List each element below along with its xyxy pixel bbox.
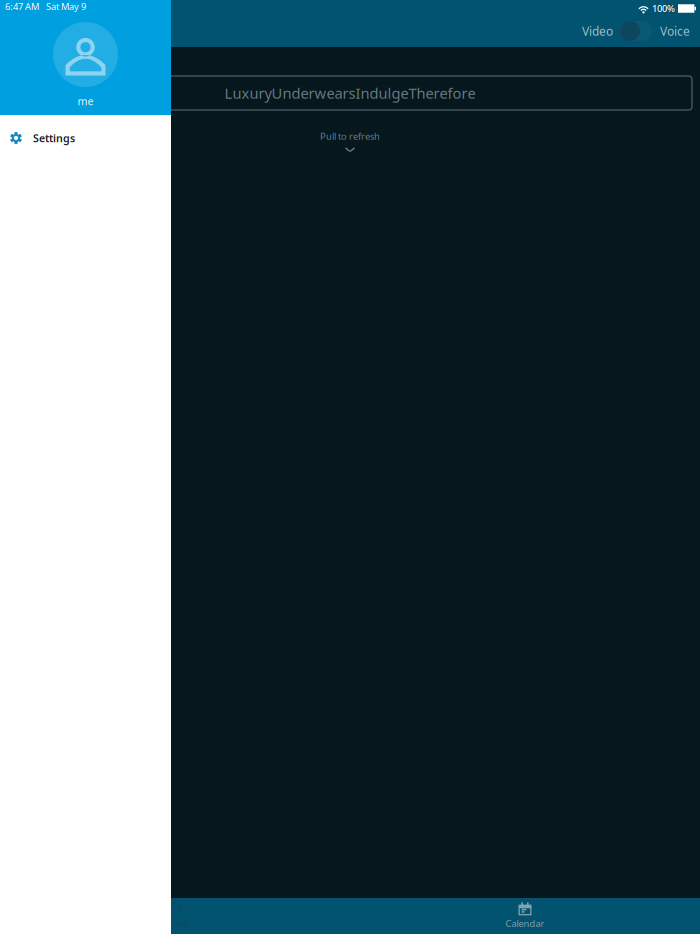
button[interactable]: me [53,12,118,108]
button[interactable]: Toggle video or voice [613,21,660,41]
button[interactable]: LuxuryUnderwearsIndulgeTherefore [0,47,700,110]
button[interactable]: Calendar [350,898,700,934]
staticText: Sat May 9 [46,0,86,13]
staticText: 6:47 AM [5,0,39,13]
staticText: Video [582,23,613,39]
staticText: LuxuryUnderwearsIndulgeTherefore [224,83,475,103]
staticText: Pull to refresh [320,130,380,142]
staticText: Recent [160,917,189,930]
staticText: Settings [33,131,75,145]
staticText: Calendar [505,917,544,930]
staticText: 100% [652,2,675,15]
staticText: Voice [660,23,690,39]
button[interactable]: Settings [0,115,171,161]
button[interactable]: Recent [0,898,350,934]
staticText: me [77,94,93,108]
